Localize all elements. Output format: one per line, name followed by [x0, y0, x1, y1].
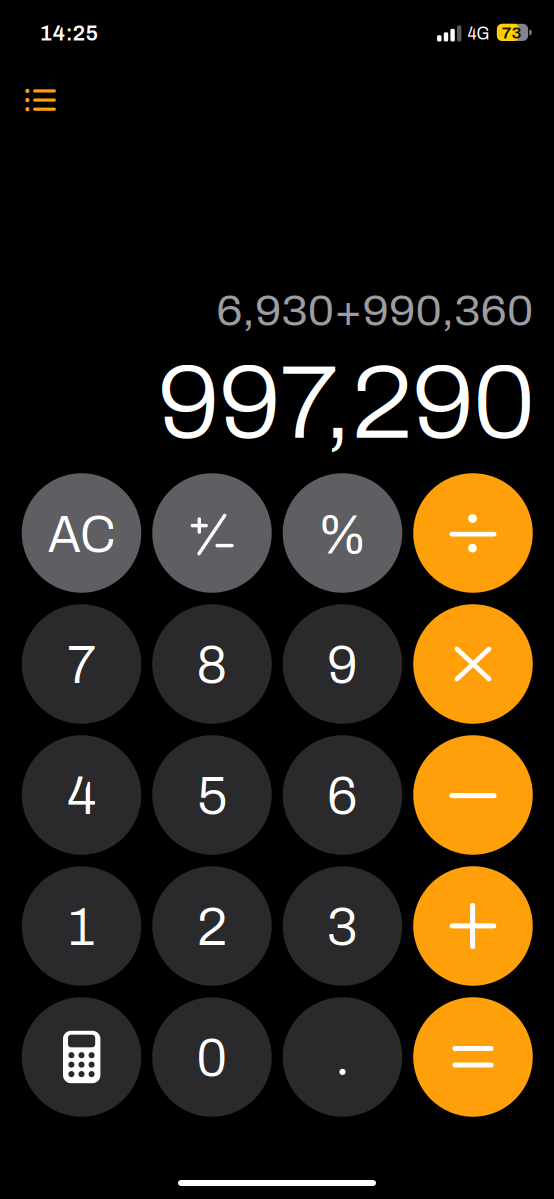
button[interactable]: 4 [22, 735, 141, 855]
staticText: 3 [327, 898, 358, 956]
staticText: 2 [197, 898, 227, 956]
staticText: 8 [196, 636, 227, 694]
button[interactable]: 9 [283, 604, 402, 724]
button[interactable]: 2 [152, 866, 272, 986]
staticText: % [317, 504, 367, 565]
button[interactable]: Plus [413, 866, 533, 986]
staticText: 73 [501, 23, 521, 42]
button[interactable]: % [283, 473, 402, 593]
staticText: AC [48, 507, 115, 563]
button[interactable]: Multiply [413, 604, 533, 724]
staticText: 997,290 [157, 346, 535, 460]
staticText: 4 [67, 767, 96, 825]
button[interactable]: Plus minus [152, 473, 272, 593]
staticText: 5 [197, 767, 227, 825]
button[interactable]: 3 [283, 866, 402, 986]
staticText: 1 [68, 898, 95, 956]
button[interactable]: Divide [413, 473, 533, 593]
staticText: 14:25 [39, 21, 98, 45]
button[interactable]: 1 [22, 866, 141, 986]
staticText: 6,930+990,360 [216, 287, 533, 334]
button[interactable]: Minus [413, 735, 533, 855]
button[interactable]: AC [22, 473, 141, 593]
button[interactable]: 0 [152, 997, 272, 1117]
button[interactable]: Calculator [22, 997, 141, 1117]
staticText: 6 [327, 767, 358, 825]
staticText: 7 [67, 636, 96, 694]
staticText: 4G [467, 24, 489, 43]
button[interactable]: Decimal point [283, 997, 402, 1117]
staticText: 9 [327, 636, 358, 694]
button[interactable]: 6 [283, 735, 402, 855]
button[interactable]: 5 [152, 735, 272, 855]
button[interactable]: History [0, 69, 80, 129]
button[interactable]: 7 [22, 604, 141, 724]
staticText: 0 [196, 1029, 227, 1087]
button[interactable]: Equals [413, 997, 533, 1117]
button[interactable]: 8 [152, 604, 272, 724]
